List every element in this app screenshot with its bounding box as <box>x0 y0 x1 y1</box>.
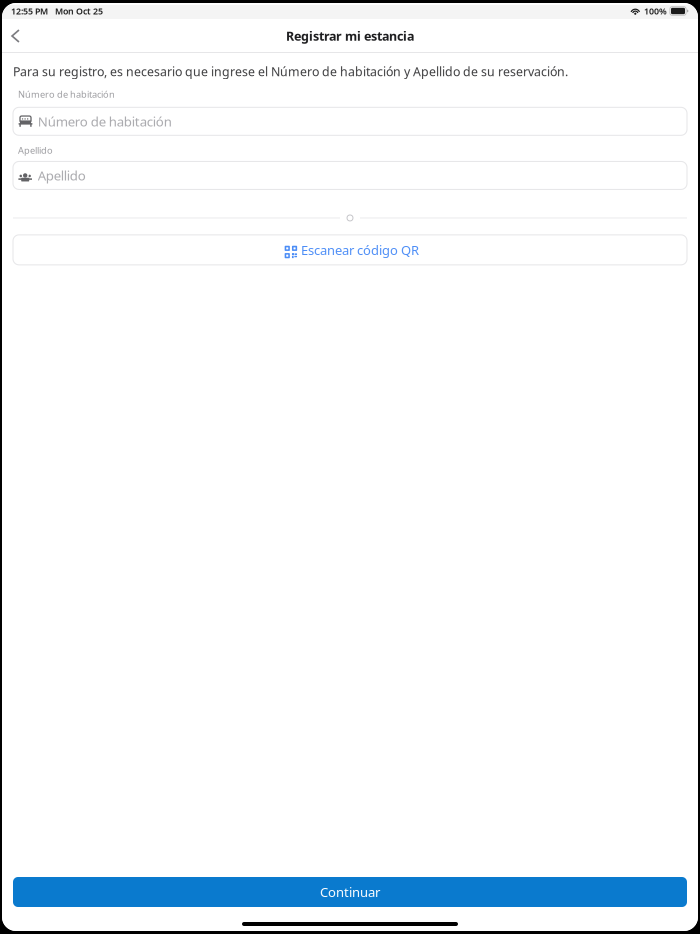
staticText: 12:55 PM <box>11 5 48 17</box>
staticText: Mon Oct 25 <box>55 5 103 17</box>
staticText: Registrar mi estancia <box>286 27 414 44</box>
staticText: Número de habitación <box>38 112 172 130</box>
staticText: Apellido <box>38 166 86 184</box>
staticText: Escanear código QR <box>301 241 419 259</box>
button[interactable]: Escanear código QR <box>13 235 687 265</box>
button[interactable]: Continuar <box>13 877 687 907</box>
staticText: 100% <box>644 5 667 17</box>
button[interactable]: Back <box>2 19 29 53</box>
staticText: Número de habitación <box>18 88 115 100</box>
staticText: Continuar <box>320 883 380 901</box>
staticText: Para su registro, es necesario que ingre… <box>13 63 568 80</box>
staticText: Apellido <box>18 144 53 156</box>
